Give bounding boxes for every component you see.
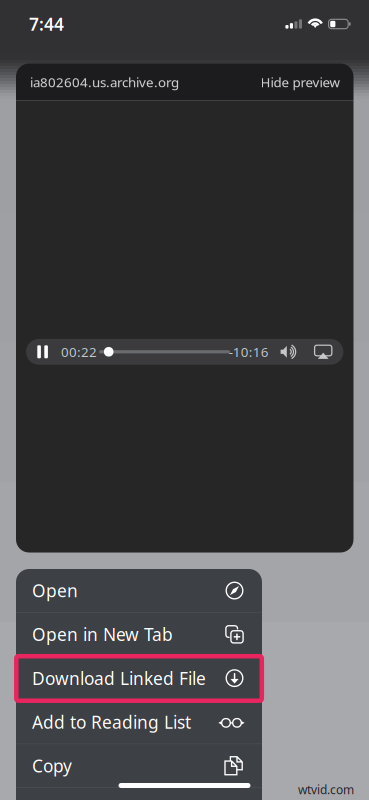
- staticText: Download Linked File: [32, 667, 206, 690]
- button[interactable]: Open: [16, 569, 262, 612]
- button[interactable]: Copy: [16, 744, 262, 787]
- button[interactable]: Open in New Tab: [16, 613, 262, 656]
- staticText: Add to Reading List: [32, 710, 191, 733]
- button[interactable]: Download Linked File: [16, 657, 262, 700]
- staticText: 00:22: [61, 343, 97, 361]
- staticText: ia802604.us.archive.org: [30, 73, 179, 91]
- staticText: Open: [32, 579, 78, 602]
- staticText: wtvid.com: [298, 781, 354, 797]
- staticText: Hide preview: [260, 73, 339, 91]
- staticText: Open in New Tab: [32, 623, 173, 646]
- button[interactable]: Add to Reading List: [16, 700, 262, 743]
- staticText: -10:16: [229, 343, 269, 361]
- button[interactable]: Hide preview: [260, 73, 339, 91]
- button[interactable]: AirPlay: [314, 344, 333, 359]
- staticText: Copy: [32, 754, 72, 777]
- button[interactable]: Volume: [280, 344, 300, 359]
- button[interactable]: Pause: [30, 339, 56, 365]
- staticText: 7:44: [29, 12, 64, 35]
